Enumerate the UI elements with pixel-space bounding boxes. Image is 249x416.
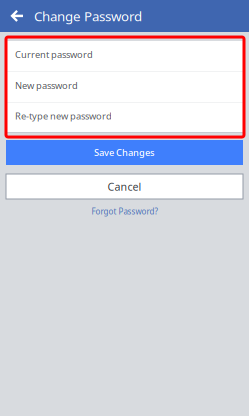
- staticText: Forgot Password?: [91, 206, 157, 217]
- staticText: New password: [15, 79, 78, 92]
- staticText: Change Password: [34, 7, 142, 25]
- button[interactable]: Back: [0, 0, 34, 32]
- button[interactable]: Forgot Password?: [91, 206, 157, 217]
- button[interactable]: Re-type new password: [6, 103, 243, 132]
- staticText: Current password: [15, 48, 93, 61]
- button[interactable]: New password: [6, 72, 243, 102]
- button[interactable]: Save Changes: [6, 140, 243, 165]
- staticText: Re-type new password: [15, 110, 112, 122]
- staticText: Save Changes: [94, 146, 155, 159]
- button[interactable]: Current password: [6, 41, 243, 71]
- button[interactable]: Cancel: [6, 174, 243, 199]
- staticText: Cancel: [107, 179, 141, 194]
